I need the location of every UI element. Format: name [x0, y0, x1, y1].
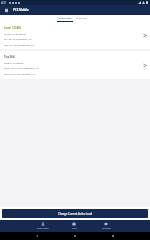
button[interactable]: Work — [58, 220, 90, 232]
staticText: PU: 02/16 Pasadena, TX — [4, 37, 32, 40]
button[interactable]: Load 122456 — [0, 22, 150, 49]
staticText: End: 09/17/20 Houston, TX — [4, 72, 36, 75]
staticText: Start: 09/17/20 Nederland, TX — [4, 66, 39, 69]
button[interactable]: Change Current Active Load — [2, 209, 148, 218]
staticText: Status: In-Progress — [4, 32, 27, 35]
staticText: PCS Mobile — [13, 8, 29, 12]
staticText: DEL: 02/16 Milwaukee, WI — [4, 43, 35, 46]
staticText: Work — [72, 227, 77, 230]
staticText: Change Current Active Load — [58, 212, 92, 216]
staticText: Status: Assigned — [4, 61, 24, 64]
button[interactable]: Trip 364 — [0, 51, 150, 79]
button[interactable]: Active/Prev — [57, 15, 73, 22]
staticText: 4:21 — [1, 1, 7, 5]
button[interactable]: Driver Profile — [27, 220, 58, 232]
staticText: Driver Profile — [37, 227, 49, 230]
button[interactable]: Open navigation menu — [3, 7, 9, 13]
staticText: Active/Prev — [59, 17, 72, 20]
staticText: Trip 364 — [4, 55, 15, 59]
staticText: Load 122456 — [4, 26, 22, 30]
button[interactable]: Upcoming — [75, 15, 88, 22]
staticText: Messages — [102, 227, 111, 230]
button[interactable]: Messages — [90, 220, 122, 232]
staticText: Upcoming — [76, 17, 87, 20]
